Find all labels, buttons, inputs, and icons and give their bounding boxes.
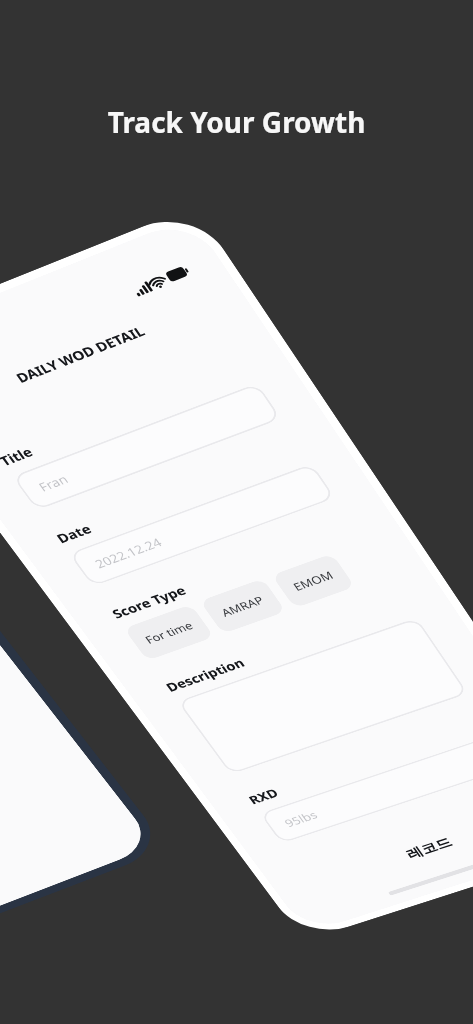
staticText: Title: [0, 442, 37, 469]
staticText: Date: [52, 520, 95, 546]
button[interactable]: [177, 617, 468, 774]
staticText: Fran: [35, 470, 72, 495]
staticText: AMRAP: [218, 593, 267, 620]
staticText: For time: [142, 618, 196, 647]
staticText: 2022.12.24: [91, 534, 166, 571]
button[interactable]: EMOM: [271, 553, 355, 608]
button[interactable]: AMRAP: [199, 578, 286, 634]
staticText: Score Type: [108, 581, 189, 622]
staticText: 95lbs: [281, 807, 321, 830]
staticText: RXD: [245, 785, 281, 807]
button[interactable]: For time: [123, 604, 214, 661]
staticText: Description: [162, 654, 248, 695]
staticText: 레코드: [403, 835, 455, 862]
button[interactable]: 95lbs: [259, 734, 473, 844]
staticText: Track Your Growth: [0, 103, 473, 141]
button[interactable]: 레코드: [268, 781, 473, 913]
button[interactable]: 2022.12.24: [68, 463, 335, 587]
staticText: DAILY WOD DETAIL: [12, 322, 148, 386]
other: Signal, wifi and battery: [130, 264, 191, 297]
button[interactable]: Fran: [12, 383, 281, 511]
staticText: EMOM: [290, 568, 336, 594]
